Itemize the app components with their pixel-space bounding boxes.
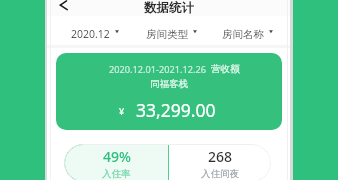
button[interactable]: 2020.12 [56, 27, 133, 41]
staticText: ¥ [119, 105, 125, 117]
button[interactable]: 房间类型 [133, 27, 209, 41]
staticText: 房间类型 [146, 28, 188, 41]
staticText: 2020.12 [71, 27, 110, 41]
staticText: 营收额 [211, 63, 240, 75]
button[interactable]: 268 [169, 144, 271, 180]
button[interactable]: Back [53, 0, 74, 18]
button[interactable]: 2020.12.01-2021.12.26 [56, 53, 282, 130]
button[interactable]: 49% [64, 144, 169, 180]
staticText: 入住率 [102, 168, 131, 180]
staticText: 49% [103, 147, 131, 166]
staticText: 房间名称 [222, 28, 264, 41]
staticText: 268 [208, 147, 233, 166]
staticText: 入住间夜 [201, 168, 239, 180]
staticText: 数据统计 [144, 0, 194, 14]
staticText: 33,299.00 [136, 98, 216, 122]
staticText: 同福客栈 [150, 78, 188, 90]
staticText: 2020.12.01-2021.12.26 [109, 63, 206, 76]
button[interactable]: 房间名称 [209, 27, 285, 41]
